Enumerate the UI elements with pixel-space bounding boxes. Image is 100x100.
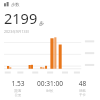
button[interactable]: 00:31:00 [32, 79, 68, 93]
staticText: 步 [39, 20, 44, 26]
staticText: 00:31:00 [32, 79, 68, 88]
button[interactable]: Steps summary [4, 2, 20, 7]
staticText: 步数 [11, 2, 20, 7]
staticText: 千卡 [68, 93, 97, 97]
button[interactable]: 48 [68, 79, 97, 97]
staticText: 距离 [4, 89, 32, 93]
staticText: 消耗 [68, 89, 97, 93]
button[interactable]: 2199 [4, 8, 44, 28]
button[interactable]: 1.53 [4, 79, 32, 97]
staticText: 2023年9月13日 [4, 29, 30, 34]
staticText: 48 [68, 79, 97, 88]
staticText: 1.53 [4, 79, 32, 88]
staticText: 2199 [4, 8, 38, 28]
button[interactable] [4, 36, 97, 78]
staticText: 时长 [32, 89, 68, 93]
staticText: 公里 [4, 93, 32, 97]
